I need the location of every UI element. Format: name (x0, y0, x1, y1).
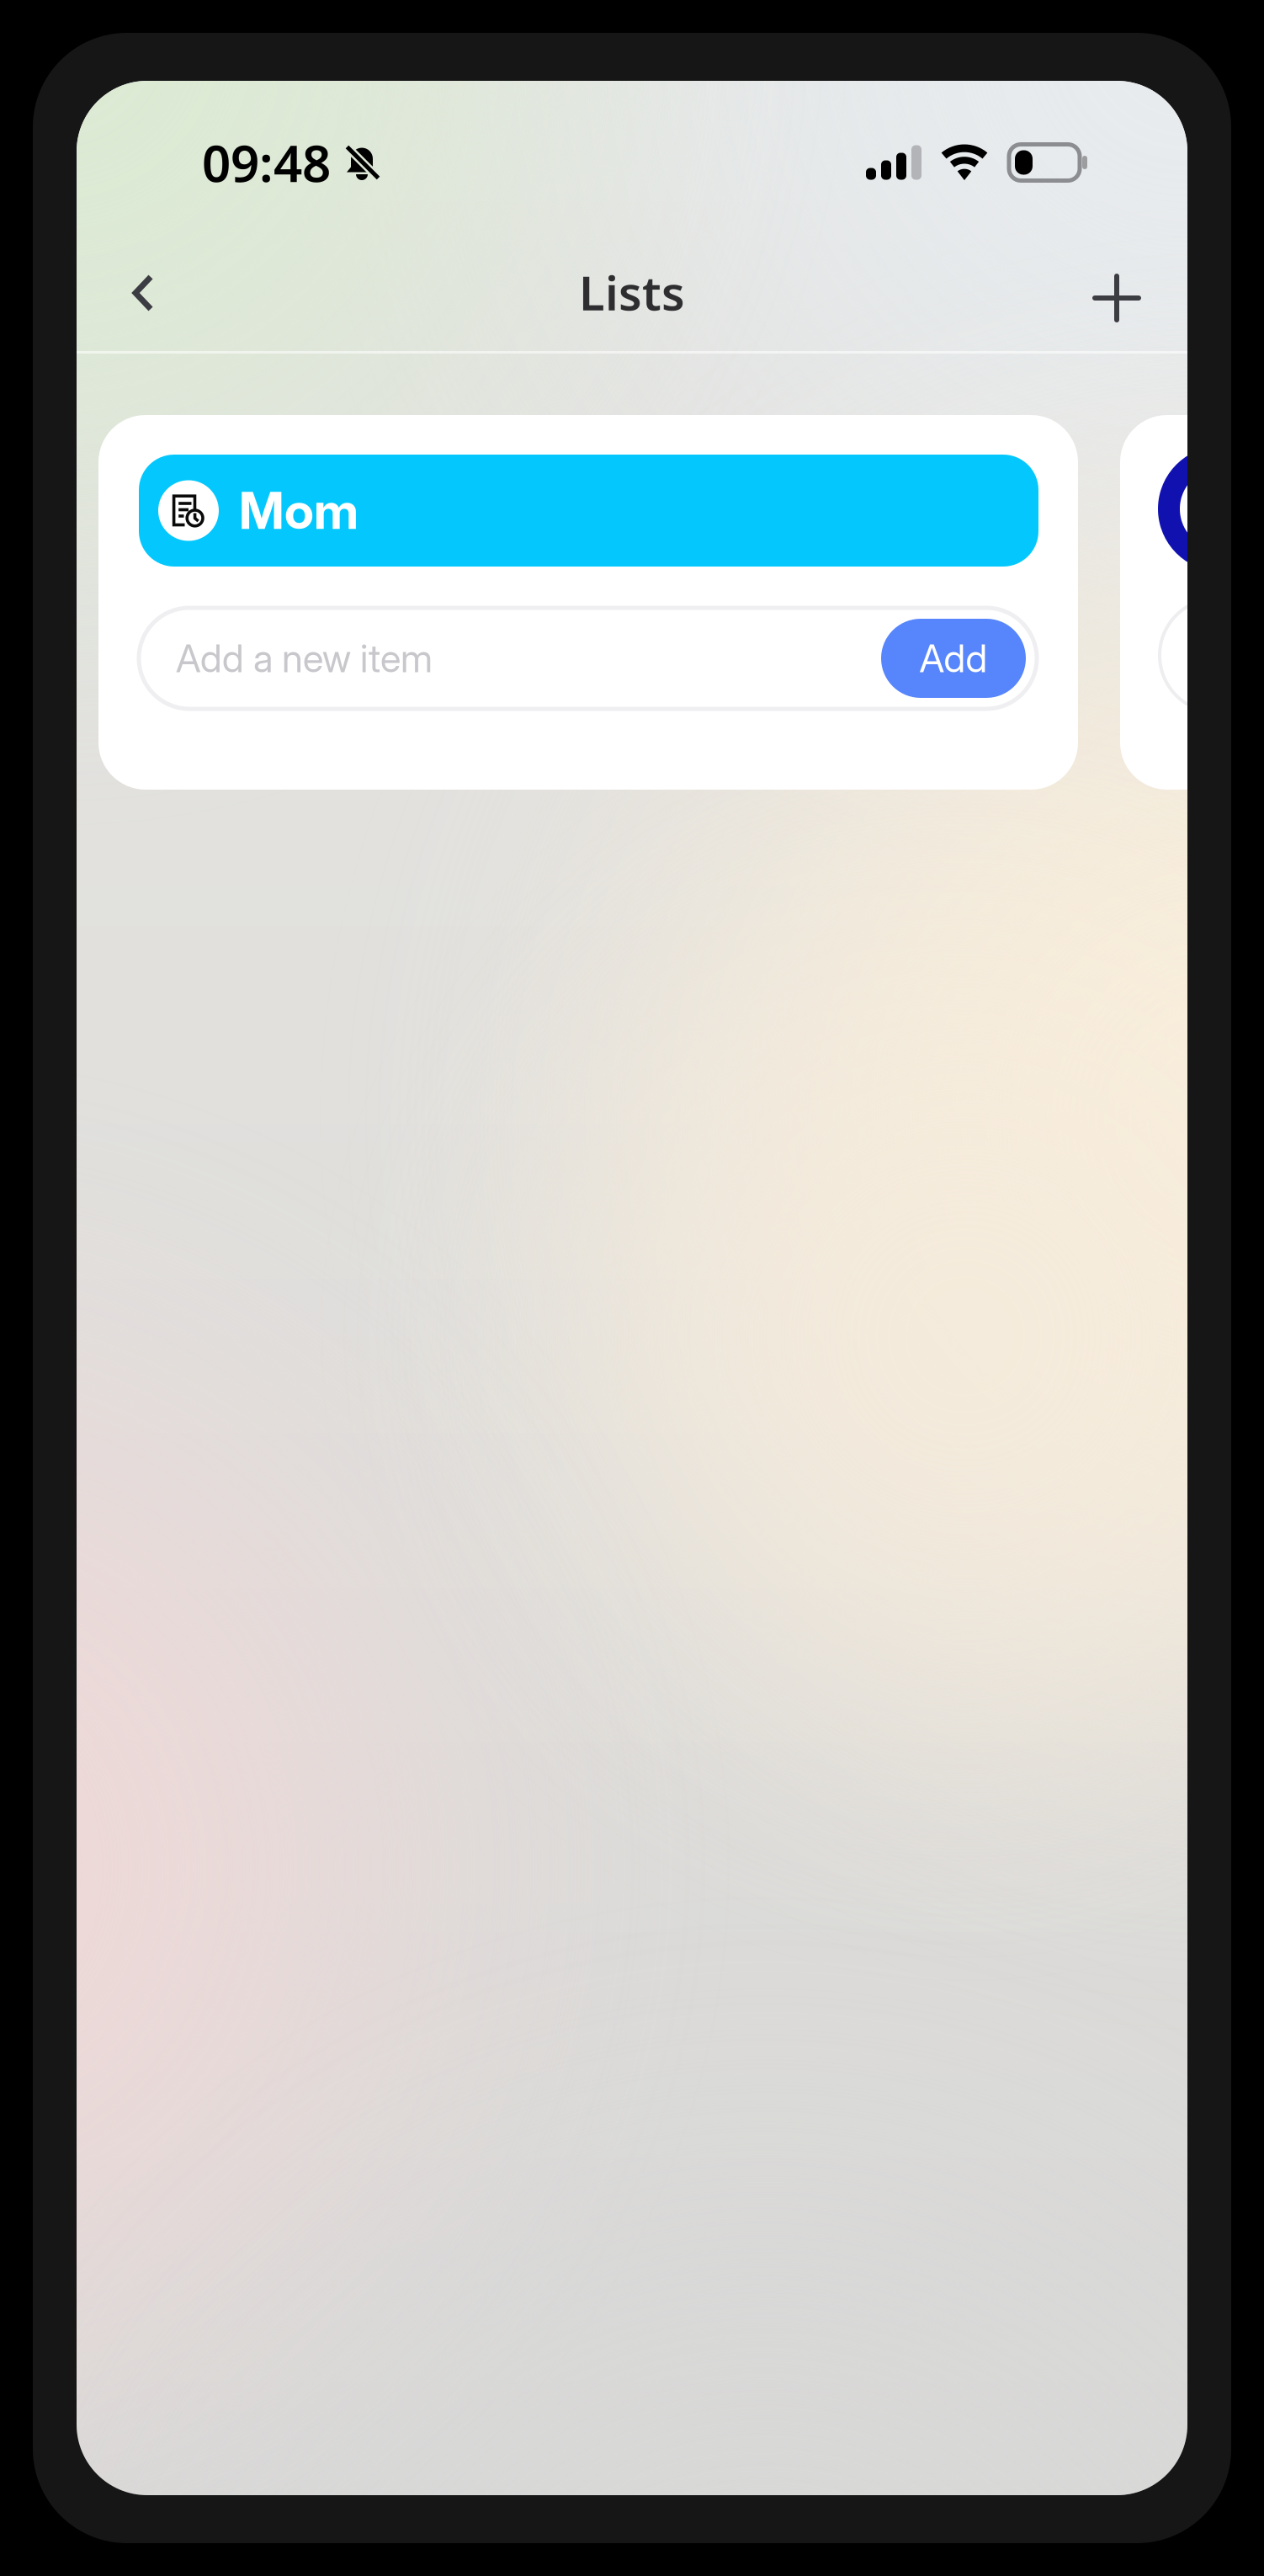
staticText: 09:48 (202, 129, 331, 196)
button[interactable]: New list (1072, 253, 1161, 343)
staticText: Lists (579, 261, 685, 323)
staticText: Mom (239, 480, 358, 541)
button[interactable]: Add (881, 619, 1026, 698)
staticText: Add a new item (176, 635, 433, 681)
staticText: Add (919, 635, 988, 681)
button[interactable]: Mom (139, 455, 1038, 567)
button[interactable]: Back (98, 248, 188, 338)
